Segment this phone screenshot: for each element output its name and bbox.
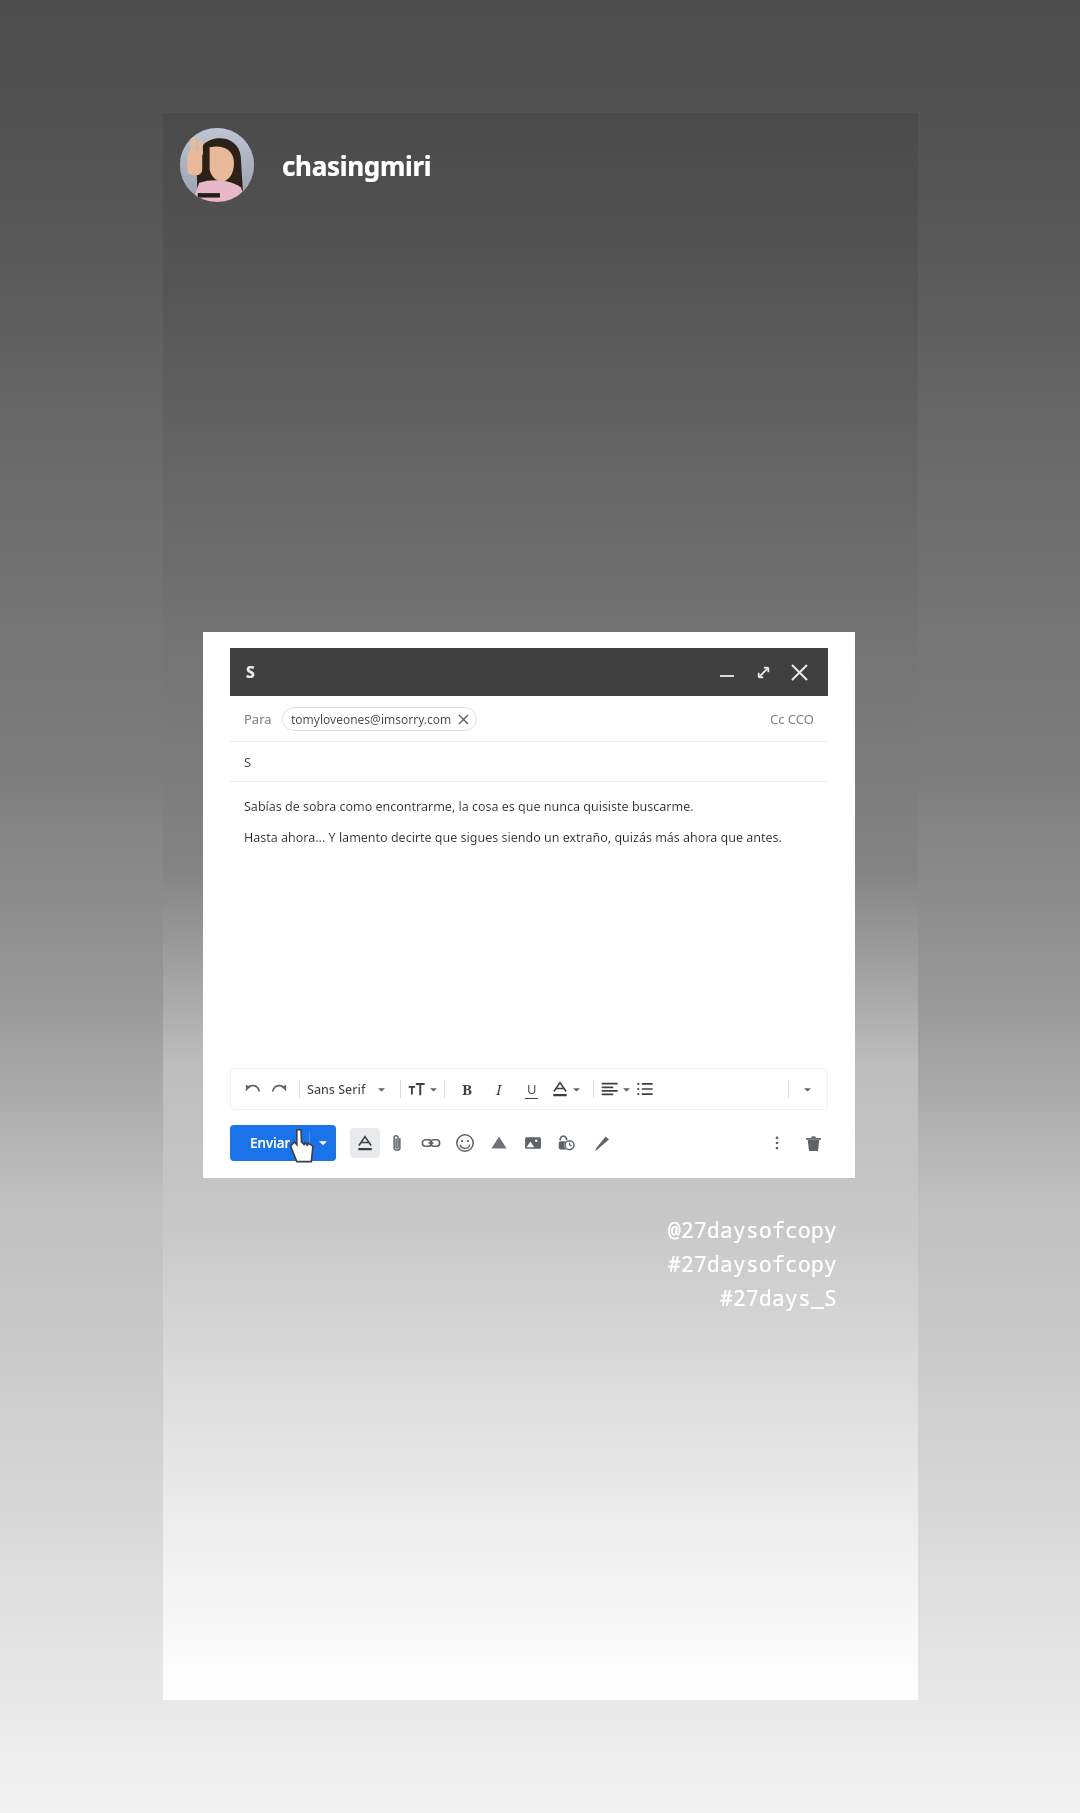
staticText: Cc CCO (770, 710, 814, 728)
button[interactable]: Text color (552, 1077, 580, 1101)
button[interactable]: Para (230, 696, 828, 742)
button[interactable]: Formatting options (350, 1128, 380, 1158)
button[interactable]: Insert link (414, 1126, 448, 1160)
button[interactable]: Bold (456, 1078, 478, 1100)
button[interactable]: Discard draft (798, 1128, 828, 1158)
staticText: S (244, 753, 252, 771)
button[interactable]: List (632, 1076, 658, 1102)
staticText: Sabías de sobra como encontrarme, la cos… (244, 798, 694, 815)
staticText: U (527, 1080, 537, 1098)
staticText: I (496, 1079, 502, 1099)
staticText: B (462, 1079, 473, 1099)
button[interactable]: Attach file (380, 1126, 414, 1160)
button[interactable]: Sans Serif (307, 1074, 385, 1104)
staticText: Para (244, 710, 272, 728)
staticText: #27days_S (720, 1284, 837, 1313)
staticText: Enviar (250, 1134, 291, 1152)
button[interactable]: Close (786, 659, 812, 685)
button[interactable]: Confidential mode (550, 1126, 584, 1160)
staticText: #27daysofcopy (668, 1250, 837, 1279)
staticText: Hasta ahora... Y lamento decirte que sig… (244, 829, 782, 846)
staticText: Sans Serif (307, 1081, 366, 1098)
staticText: tomyloveones@imsorry.com (291, 711, 452, 727)
button[interactable]: Insert signature (584, 1126, 618, 1160)
button[interactable]: Redo (266, 1076, 292, 1102)
button[interactable]: Enviar (230, 1125, 336, 1161)
staticText: chasingmiri (282, 148, 432, 183)
staticText: @27daysofcopy (668, 1216, 837, 1245)
button[interactable]: S (230, 742, 828, 782)
button[interactable]: Align (601, 1076, 630, 1102)
button[interactable]: Italic (488, 1078, 510, 1100)
button[interactable]: Font size (408, 1076, 437, 1102)
staticText: S (246, 661, 255, 683)
button[interactable]: Sabías de sobra como encontrarme, la cos… (244, 782, 814, 1068)
button[interactable]: More options (762, 1128, 792, 1158)
button[interactable]: Underline (520, 1078, 542, 1100)
button[interactable]: Expand (750, 659, 776, 685)
button[interactable]: Insert from Drive (482, 1126, 516, 1160)
button[interactable]: Undo (240, 1076, 266, 1102)
button[interactable]: Insert emoji (448, 1126, 482, 1160)
button[interactable]: More formatting (796, 1078, 818, 1100)
button[interactable]: chasingmiri (180, 128, 432, 202)
button[interactable]: Minimize (714, 659, 740, 685)
button[interactable]: Insert photo (516, 1126, 550, 1160)
